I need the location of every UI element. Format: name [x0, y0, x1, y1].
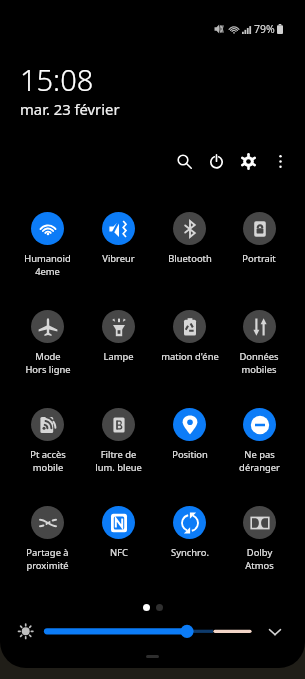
button[interactable]: Données mobiles	[225, 310, 293, 376]
button[interactable]: More options	[264, 145, 296, 177]
button[interactable]: Settings	[232, 145, 264, 177]
staticText: Vibreur	[102, 252, 135, 265]
staticText: Partage à proximité	[26, 546, 69, 572]
staticText: Filtre de lum. bleue	[95, 448, 142, 474]
staticText: Bluetooth	[168, 252, 212, 265]
staticText: Pt accès mobile	[30, 448, 66, 474]
button[interactable]: Pt accès mobile	[12, 408, 83, 474]
button[interactable]: Humanoid 4eme	[12, 212, 83, 278]
button[interactable]: mation d'éne	[154, 310, 225, 363]
staticText: Dolby Atmos	[245, 546, 274, 572]
staticText: Ne pas déranger	[239, 448, 280, 474]
button[interactable]: Position	[154, 408, 225, 461]
button[interactable]: Portrait	[225, 212, 293, 265]
staticText: Synchro.	[171, 546, 209, 559]
staticText: Données mobiles	[239, 350, 279, 376]
staticText: Mode Hors ligne	[25, 350, 71, 376]
staticText: 15:08	[20, 60, 94, 99]
button[interactable]: NFC	[83, 506, 154, 559]
staticText: Humanoid 4eme	[24, 252, 71, 278]
staticText: NFC	[110, 546, 128, 559]
button[interactable]: Vibreur	[83, 212, 154, 265]
button[interactable]: Search	[168, 145, 200, 177]
staticText: mation d'éne	[161, 350, 219, 363]
button[interactable]: Filtre de lum. bleue	[83, 408, 154, 474]
button[interactable]: Power off	[200, 145, 232, 177]
staticText: Lampe	[103, 350, 134, 363]
button[interactable]: Lampe	[83, 310, 154, 363]
button[interactable]: Expand quick settings	[263, 620, 287, 643]
button[interactable]: Ne pas déranger	[225, 408, 293, 474]
button[interactable]: Bluetooth	[154, 212, 225, 265]
staticText: Position	[172, 448, 208, 461]
button[interactable]: Dolby Atmos	[225, 506, 293, 572]
button[interactable]: Partage à proximité	[12, 506, 83, 572]
button[interactable]: Mode Hors ligne	[12, 310, 83, 376]
button[interactable]: Synchro.	[154, 506, 225, 559]
staticText: mar. 23 février	[20, 99, 120, 119]
staticText: 79%	[254, 22, 275, 36]
staticText: Portrait	[242, 252, 276, 265]
